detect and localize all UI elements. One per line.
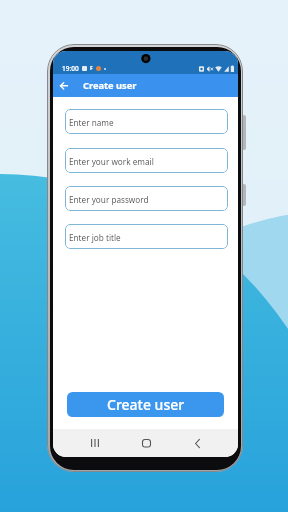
staticText: Enter job title — [69, 232, 121, 243]
button[interactable] — [83, 429, 107, 457]
button[interactable]: Create user — [67, 392, 224, 417]
button[interactable]: Enter your password — [65, 186, 228, 211]
button[interactable]: Enter your work email — [65, 148, 228, 173]
staticText: Enter your work email — [69, 156, 154, 167]
button[interactable]: Enter job title — [65, 224, 228, 249]
button[interactable] — [185, 429, 209, 457]
staticText: 19:00 — [62, 64, 79, 73]
staticText: F — [90, 65, 93, 72]
button[interactable] — [134, 429, 158, 457]
staticText: Create user — [107, 395, 185, 414]
staticText: Create user — [83, 79, 137, 92]
button[interactable] — [53, 74, 75, 97]
button[interactable]: Enter name — [65, 109, 228, 134]
staticText: Enter your password — [69, 194, 149, 205]
staticText: Enter name — [69, 117, 114, 128]
